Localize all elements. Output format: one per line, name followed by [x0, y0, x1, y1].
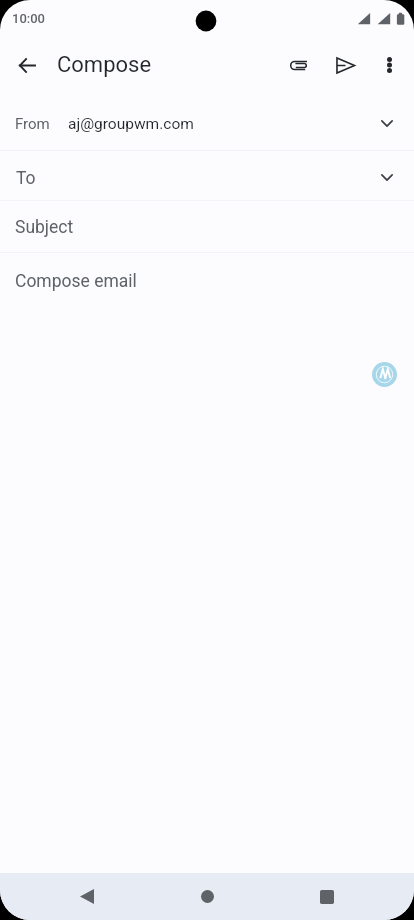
button[interactable]: Compose email [0, 253, 414, 307]
staticText: Compose [57, 52, 152, 78]
staticText: 10:00 [12, 11, 45, 26]
button[interactable]: From [0, 96, 414, 150]
button[interactable]: Subject [0, 201, 414, 252]
staticText: To [16, 168, 36, 189]
staticText: From [15, 115, 50, 133]
button[interactable]: Attach file [275, 42, 323, 88]
button[interactable]: Navigate up [3, 42, 51, 88]
staticText: Compose email [15, 271, 137, 292]
staticText: aj@groupwm.com [68, 115, 194, 133]
button[interactable]: Recent apps [267, 873, 387, 920]
button[interactable]: To [0, 151, 414, 200]
staticText: Subject [15, 217, 74, 238]
button[interactable]: Back [27, 873, 147, 920]
button[interactable]: More options [365, 42, 413, 88]
button[interactable]: Send [321, 42, 369, 88]
button[interactable]: Home [147, 873, 267, 920]
